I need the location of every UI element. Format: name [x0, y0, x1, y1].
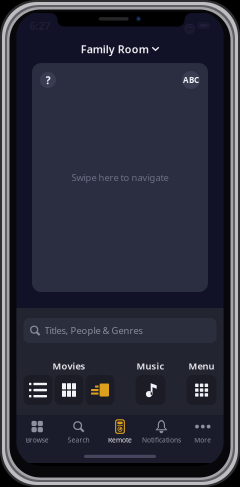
staticText: 6:27: [29, 18, 50, 33]
button[interactable]: Family Room: [81, 39, 159, 59]
button[interactable]: Keyboard: [182, 71, 200, 89]
button[interactable]: More: [182, 418, 223, 445]
button[interactable]: Notifications: [141, 418, 182, 445]
staticText: Search: [68, 436, 90, 444]
staticText: ?: [45, 73, 50, 87]
staticText: Movies: [52, 360, 85, 372]
staticText: More: [194, 436, 211, 444]
button[interactable]: Music: [135, 375, 165, 405]
button[interactable]: Movies grid: [54, 375, 83, 405]
staticText: Family Room: [81, 42, 149, 56]
button[interactable]: Movies featured: [85, 375, 114, 405]
staticText: Notifications: [142, 436, 181, 444]
button[interactable]: Titles, People & Genres: [23, 318, 216, 343]
button[interactable]: Search: [58, 418, 99, 445]
staticText: Music: [136, 360, 164, 372]
staticText: Menu: [188, 360, 214, 372]
button[interactable]: Menu: [186, 375, 216, 405]
staticText: ABC: [183, 75, 199, 85]
staticText: Titles, People & Genres: [44, 324, 142, 337]
button[interactable]: Help: [40, 72, 56, 88]
staticText: Remote: [108, 436, 132, 444]
staticText: Browse: [26, 436, 49, 444]
button[interactable]: Movies list: [23, 375, 52, 405]
button[interactable]: Remote: [99, 418, 141, 445]
staticText: Swipe here to navigate: [71, 171, 168, 184]
button[interactable]: Browse: [16, 418, 58, 445]
